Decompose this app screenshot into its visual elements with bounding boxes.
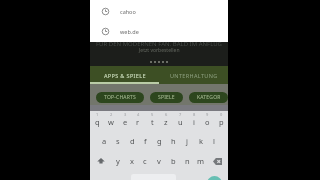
button[interactable]: f — [138, 131, 152, 151]
staticText: 7 — [179, 112, 182, 117]
staticText: FÜR DEN MODERNEN FAN. BALD IM ANFLUG — [96, 40, 222, 48]
staticText: 2 — [110, 112, 113, 117]
button[interactable]: 5 — [145, 111, 159, 131]
button[interactable]: s — [111, 131, 125, 151]
button[interactable]: 8 — [187, 111, 201, 131]
staticText: web.de — [120, 28, 139, 35]
staticText: TOP-CHARTS — [104, 94, 136, 101]
button[interactable]: x — [125, 151, 139, 171]
staticText: l — [213, 136, 215, 146]
button[interactable]: c — [138, 151, 152, 171]
staticText: 9 — [206, 112, 209, 117]
staticText: b — [171, 156, 176, 166]
staticText: h — [171, 136, 176, 146]
button[interactable]: 4 — [131, 111, 145, 131]
staticText: w — [108, 117, 114, 127]
button[interactable]: SPIELE — [150, 92, 183, 103]
button[interactable]: b — [166, 151, 180, 171]
staticText: r — [136, 117, 140, 127]
staticText: n — [185, 156, 190, 166]
staticText: a — [102, 136, 107, 146]
button[interactable]: 6 — [159, 111, 173, 131]
staticText: o — [205, 117, 210, 127]
button[interactable]: v — [152, 151, 166, 171]
button[interactable]: Shift — [90, 151, 111, 171]
staticText: e — [123, 117, 128, 127]
button[interactable]: UNTERHALTUNG — [159, 66, 228, 84]
button[interactable]: KATEGORIEN — [189, 92, 228, 103]
staticText: d — [130, 136, 135, 146]
staticText: Jetzt vorbestellen — [139, 47, 180, 54]
button[interactable]: n — [180, 151, 194, 171]
staticText: j — [186, 136, 188, 146]
button[interactable]: k — [194, 131, 208, 151]
staticText: cahoo — [120, 8, 136, 15]
button[interactable]: 0 — [214, 111, 228, 131]
button[interactable]: APPS & SPIELE — [90, 66, 159, 84]
button[interactable]: d — [125, 131, 139, 151]
staticText: t — [151, 117, 154, 127]
staticText: SPIELE — [158, 94, 175, 101]
staticText: s — [116, 136, 120, 146]
staticText: c — [143, 156, 147, 166]
button[interactable]: web.de — [90, 24, 228, 38]
staticText: f — [144, 136, 147, 146]
button[interactable]: 1 — [90, 111, 104, 131]
staticText: i — [193, 117, 195, 127]
staticText: UNTERHALTUNG — [170, 72, 218, 79]
staticText: 0 — [220, 112, 223, 117]
button[interactable]: a — [97, 131, 111, 151]
button[interactable]: TOP-CHARTS — [96, 92, 144, 103]
staticText: v — [157, 156, 161, 166]
staticText: u — [178, 117, 183, 127]
staticText: g — [157, 136, 162, 146]
button[interactable]: 7 — [173, 111, 187, 131]
button[interactable]: y — [111, 151, 125, 171]
button[interactable]: cahoo — [90, 4, 228, 18]
staticText: k — [199, 136, 204, 146]
staticText: q — [95, 117, 100, 127]
staticText: KATEGORIEN — [197, 94, 220, 101]
button[interactable]: 3 — [118, 111, 132, 131]
button[interactable]: Backspace — [207, 151, 228, 171]
button[interactable]: m — [194, 151, 208, 171]
staticText: x — [130, 156, 134, 166]
button[interactable]: l — [207, 131, 221, 151]
staticText: y — [116, 156, 120, 166]
staticText: 6 — [165, 112, 168, 117]
button[interactable]: g — [152, 131, 166, 151]
staticText: 4 — [137, 112, 140, 117]
staticText: 1 — [96, 112, 99, 117]
staticText: 5 — [151, 112, 154, 117]
staticText: 8 — [193, 112, 196, 117]
button[interactable]: 2 — [104, 111, 118, 131]
staticText: APPS & SPIELE — [104, 72, 146, 79]
button[interactable]: h — [166, 131, 180, 151]
staticText: p — [219, 117, 224, 127]
staticText: z — [164, 117, 168, 127]
staticText: 3 — [124, 112, 127, 117]
button[interactable]: j — [180, 131, 194, 151]
staticText: m — [197, 156, 205, 166]
button[interactable]: 9 — [200, 111, 214, 131]
button[interactable]: Search — [207, 176, 222, 180]
